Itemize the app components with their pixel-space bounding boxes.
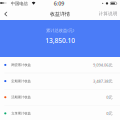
staticText: 中国电信 [43, 3, 111, 25]
button[interactable]: Back [1, 32, 45, 80]
